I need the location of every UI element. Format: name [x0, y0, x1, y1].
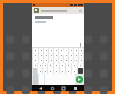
button[interactable]	[54, 58, 58, 63]
button[interactable]	[64, 53, 68, 58]
button[interactable]	[38, 63, 42, 68]
button[interactable]	[39, 58, 43, 63]
button[interactable]	[66, 68, 71, 74]
button[interactable]: Recents	[61, 86, 66, 91]
button[interactable]	[43, 63, 47, 68]
button[interactable]	[54, 68, 59, 74]
button[interactable]: Back	[38, 86, 43, 91]
button[interactable]: Home	[50, 86, 55, 91]
button[interactable]: App icon	[32, 7, 84, 14]
button[interactable]	[60, 63, 65, 68]
other: App icon	[34, 8, 39, 13]
button[interactable]: Menu	[73, 86, 78, 91]
button[interactable]	[44, 48, 48, 53]
button[interactable]	[64, 58, 68, 63]
button[interactable]	[44, 58, 48, 63]
button[interactable]	[79, 58, 83, 63]
button[interactable]	[60, 68, 65, 74]
button[interactable]	[72, 68, 77, 74]
button[interactable]	[64, 48, 68, 53]
button[interactable]	[33, 53, 38, 58]
button[interactable]	[54, 48, 58, 53]
button[interactable]	[59, 53, 63, 58]
button[interactable]	[69, 58, 73, 63]
button[interactable]	[33, 63, 37, 68]
button[interactable]: Send	[76, 76, 83, 83]
button[interactable]	[49, 58, 53, 63]
button[interactable]	[59, 48, 63, 53]
button[interactable]	[43, 68, 47, 74]
button[interactable]	[74, 58, 78, 63]
button[interactable]	[33, 48, 38, 53]
button[interactable]	[39, 53, 43, 58]
button[interactable]	[38, 68, 42, 74]
button[interactable]	[78, 63, 83, 68]
button[interactable]	[79, 48, 83, 53]
button[interactable]	[39, 48, 43, 53]
button[interactable]	[54, 53, 58, 58]
button[interactable]	[74, 48, 78, 53]
button[interactable]	[72, 63, 77, 68]
button[interactable]	[49, 48, 53, 53]
button[interactable]	[69, 53, 73, 58]
button[interactable]	[33, 58, 38, 63]
button[interactable]	[54, 63, 59, 68]
button[interactable]	[79, 53, 83, 58]
button[interactable]	[49, 53, 53, 58]
button[interactable]	[74, 53, 78, 58]
button[interactable]	[44, 53, 48, 58]
button[interactable]	[69, 48, 73, 53]
button[interactable]	[59, 58, 63, 63]
button[interactable]	[66, 63, 71, 68]
button[interactable]: Backspace	[78, 68, 83, 74]
button[interactable]	[48, 63, 53, 68]
button[interactable]	[48, 68, 53, 74]
